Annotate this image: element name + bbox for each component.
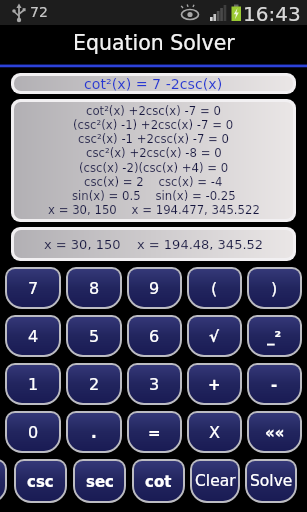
staticText: (csc(x) -2)(csc(x) +4) = 0 [79,161,229,175]
button[interactable]: 5 [66,315,122,357]
staticText: - [271,376,278,393]
staticText: + [208,376,221,393]
staticText: 1 [28,375,39,394]
staticText: 0 [28,423,39,442]
staticText: _² [267,328,282,345]
staticText: sec [86,473,114,490]
staticText: 72 [30,4,48,20]
button[interactable]: sec [73,459,126,503]
staticText: 2 [89,375,100,394]
staticText: = [148,424,161,441]
button[interactable]: X [187,411,242,453]
button[interactable]: 7 [5,267,61,309]
button[interactable]: 1 [5,363,61,405]
staticText: ) [271,279,278,298]
staticText: . [91,424,97,441]
button[interactable]: 9 [127,267,182,309]
button[interactable]: cot [132,459,185,503]
staticText: 9 [149,279,160,298]
staticText: (csc²(x) -1) +2csc(x) -7 = 0 [73,118,234,132]
staticText: csc²(x) -1 +2csc(x) -7 = 0 [78,132,229,146]
button[interactable]: 6 [127,315,182,357]
staticText: csc(x) = 2 csc(x) = -4 [84,175,223,189]
button[interactable]: 3 [127,363,182,405]
button[interactable]: ) [247,267,302,309]
button[interactable]: 2 [66,363,122,405]
button[interactable]: ( [187,267,242,309]
staticText: 16:43 [243,2,301,25]
button[interactable]: + [187,363,242,405]
button[interactable]: = [127,411,182,453]
staticText: ( [211,279,218,298]
staticText: csc²(x) +2csc(x) -8 = 0 [86,146,222,160]
staticText: 3 [149,375,160,394]
staticText: √ [209,328,220,345]
staticText: 6 [149,327,160,346]
staticText: «« [265,424,285,441]
staticText: Solve [250,472,293,490]
button[interactable] [0,459,7,503]
staticText: 4 [28,327,39,346]
staticText: 7 [28,279,39,298]
button[interactable]: 4 [5,315,61,357]
staticText: cot [145,473,172,490]
staticText: 5 [89,327,100,346]
staticText: X [209,423,220,442]
staticText: sin(x) = 0.5 sin(x) = -0.25 [72,189,236,203]
staticText: csc [27,473,54,490]
button[interactable]: «« [247,411,302,453]
button[interactable]: Solve [245,459,297,503]
staticText: Equation Solver [73,31,235,55]
staticText: Clear [195,472,236,490]
staticText: x = 30, 150 x = 194.477, 345.522 [48,203,260,217]
button[interactable]: 8 [66,267,122,309]
button[interactable]: . [66,411,122,453]
button[interactable]: - [247,363,302,405]
staticText: cot²(x) +2csc(x) -7 = 0 [86,104,221,118]
button[interactable]: √ [187,315,242,357]
button[interactable]: 0 [5,411,61,453]
button[interactable]: Clear [190,459,240,503]
button[interactable]: _² [247,315,302,357]
staticText: 8 [89,279,100,298]
staticText: x = 30, 150 x = 194.48, 345.52 [44,237,264,252]
staticText: cot²(x) = 7 -2csc(x) [84,76,223,91]
button[interactable]: csc [14,459,67,503]
